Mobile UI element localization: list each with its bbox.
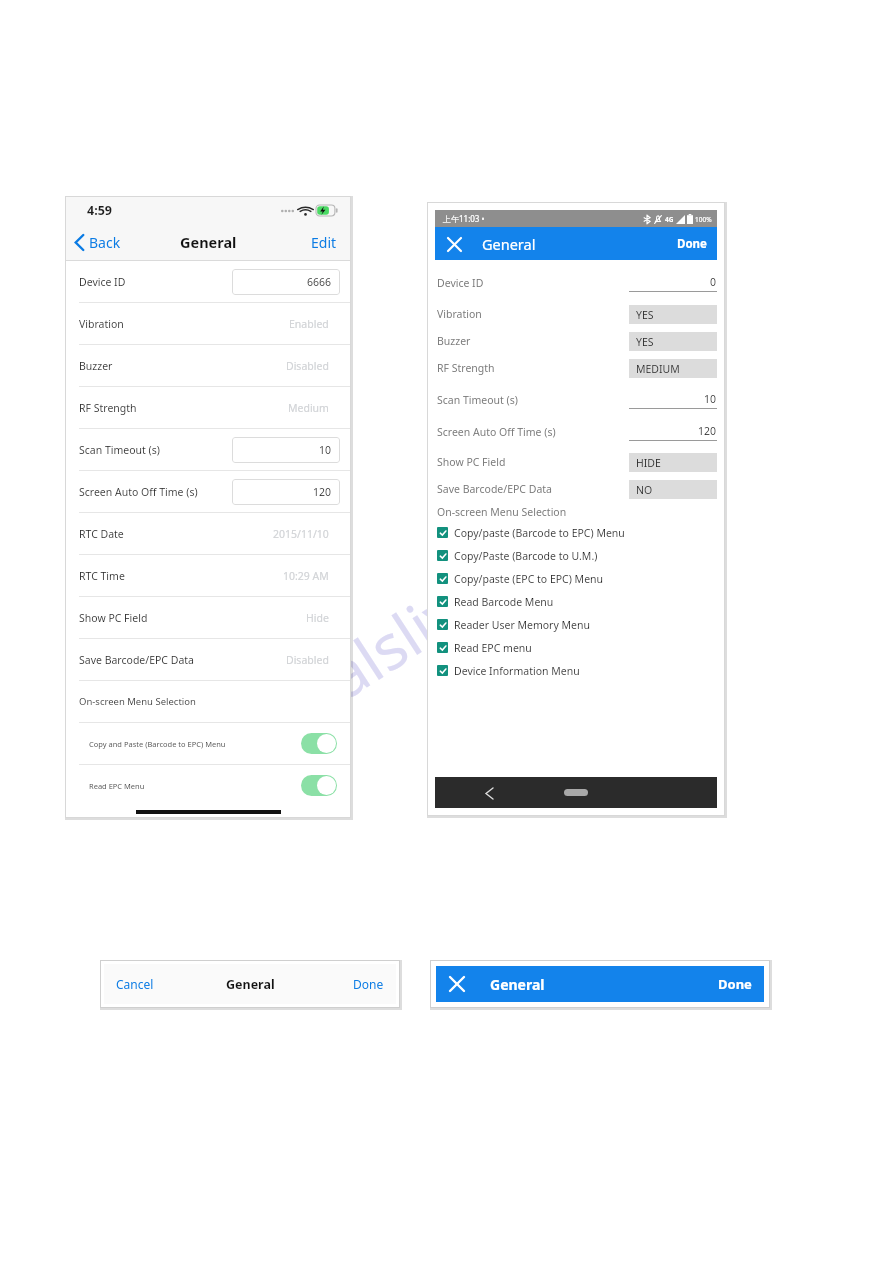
- button[interactable]: Done: [677, 236, 707, 252]
- staticText: Medium: [288, 401, 329, 415]
- staticText: Copy/Paste (Barcode to U.M.): [454, 549, 598, 563]
- staticText: 120: [313, 485, 332, 499]
- button[interactable]: Cancel: [116, 976, 154, 992]
- staticText: On-screen Menu Selection: [437, 505, 567, 519]
- button[interactable]: Read EPC Menu: [301, 775, 337, 796]
- staticText: Device ID: [437, 276, 484, 290]
- staticText: 0: [710, 275, 717, 289]
- button[interactable]: Read Barcode Menu: [435, 590, 717, 613]
- staticText: YES: [636, 335, 654, 349]
- staticText: Device ID: [79, 275, 126, 289]
- button[interactable]: Device ID: [435, 271, 717, 295]
- staticText: 4:59: [87, 202, 112, 219]
- staticText: YES: [636, 308, 654, 322]
- button[interactable]: Save Barcode/EPC Data: [65, 639, 351, 680]
- staticText: RF Strength: [437, 361, 495, 375]
- staticText: Device Information Menu: [454, 664, 580, 678]
- staticText: 100%: [695, 215, 712, 224]
- staticText: NO: [636, 483, 653, 497]
- staticText: HIDE: [636, 456, 661, 470]
- staticText: Copy/paste (Barcode to EPC) Menu: [454, 526, 625, 540]
- staticText: 10: [704, 392, 717, 406]
- button[interactable]: Vibration: [435, 303, 717, 325]
- staticText: Disabled: [286, 653, 329, 667]
- button[interactable]: Copy and Paste (Barcode to EPC) Menu: [301, 733, 337, 754]
- staticText: 120: [698, 424, 717, 438]
- staticText: Hide: [306, 611, 329, 625]
- staticText: 4G: [665, 215, 674, 224]
- button[interactable]: Copy and Paste (Barcode to EPC) Menu: [65, 723, 351, 764]
- staticText: Save Barcode/EPC Data: [79, 653, 194, 667]
- button[interactable]: Buzzer: [435, 330, 717, 352]
- staticText: Disabled: [286, 359, 329, 373]
- staticText: RTC Time: [79, 569, 125, 583]
- button[interactable]: Copy/Paste (Barcode to U.M.): [435, 544, 717, 567]
- staticText: Vibration: [79, 317, 124, 331]
- staticText: Copy/paste (EPC to EPC) Menu: [454, 572, 604, 586]
- staticText: 上午11:03 •: [443, 213, 485, 224]
- staticText: Reader User Memory Menu: [454, 618, 590, 632]
- button[interactable]: Read EPC Menu: [65, 765, 351, 806]
- staticText: Screen Auto Off Time (s): [437, 425, 556, 439]
- staticText: Read EPC menu: [454, 641, 532, 655]
- button[interactable]: RTC Date: [65, 513, 351, 554]
- staticText: 10:29 AM: [283, 569, 329, 583]
- staticText: Copy and Paste (Barcode to EPC) Menu: [89, 739, 226, 749]
- button[interactable]: RF Strength: [65, 387, 351, 428]
- staticText: manualslive.com: [167, 471, 625, 809]
- staticText: Scan Timeout (s): [79, 443, 160, 457]
- staticText: Show PC Field: [437, 455, 506, 469]
- button[interactable]: Close: [446, 973, 468, 995]
- staticText: Screen Auto Off Time (s): [79, 485, 198, 499]
- staticText: 2015/11/10: [273, 527, 329, 541]
- staticText: RTC Date: [79, 527, 124, 541]
- button[interactable]: Done: [353, 976, 384, 992]
- button[interactable]: Scan Timeout (s): [435, 388, 717, 412]
- staticText: RF Strength: [79, 401, 137, 415]
- staticText: Scan Timeout (s): [437, 393, 518, 407]
- button[interactable]: Show PC Field: [65, 597, 351, 638]
- button[interactable]: Save Barcode/EPC Data: [435, 478, 717, 500]
- staticText: Read Barcode Menu: [454, 595, 554, 609]
- button[interactable]: Home: [564, 789, 588, 796]
- staticText: General: [482, 234, 536, 254]
- staticText: General: [226, 976, 275, 993]
- staticText: On-screen Menu Selection: [79, 695, 196, 708]
- staticText: Buzzer: [437, 334, 471, 348]
- button[interactable]: Edit: [311, 233, 337, 252]
- button[interactable]: Scan Timeout (s): [65, 429, 351, 470]
- button[interactable]: Vibration: [65, 303, 351, 344]
- button[interactable]: Back: [75, 233, 121, 252]
- button[interactable]: Copy/paste (Barcode to EPC) Menu: [435, 521, 717, 544]
- button[interactable]: Read EPC menu: [435, 636, 717, 659]
- button[interactable]: RTC Time: [65, 555, 351, 596]
- staticText: Buzzer: [79, 359, 113, 373]
- button[interactable]: RF Strength: [435, 357, 717, 379]
- button[interactable]: Show PC Field: [435, 451, 717, 473]
- button[interactable]: Reader User Memory Menu: [435, 613, 717, 636]
- staticText: Read EPC Menu: [89, 781, 145, 791]
- staticText: 10: [319, 443, 332, 457]
- staticText: General: [490, 975, 545, 994]
- button[interactable]: Screen Auto Off Time (s): [65, 471, 351, 512]
- staticText: MEDIUM: [636, 362, 680, 376]
- staticText: Enabled: [289, 317, 329, 331]
- button[interactable]: Back: [479, 783, 499, 803]
- button[interactable]: Device ID: [65, 261, 351, 302]
- staticText: 6666: [307, 275, 332, 289]
- button[interactable]: Buzzer: [65, 345, 351, 386]
- button[interactable]: Device Information Menu: [435, 659, 717, 682]
- staticText: Show PC Field: [79, 611, 148, 625]
- button[interactable]: Screen Auto Off Time (s): [435, 420, 717, 444]
- button[interactable]: Done: [718, 975, 752, 993]
- staticText: Vibration: [437, 307, 482, 321]
- staticText: Save Barcode/EPC Data: [437, 482, 552, 496]
- button[interactable]: Close: [444, 234, 464, 254]
- staticText: Back: [89, 233, 121, 252]
- button[interactable]: Copy/paste (EPC to EPC) Menu: [435, 567, 717, 590]
- staticText: General: [180, 232, 237, 252]
